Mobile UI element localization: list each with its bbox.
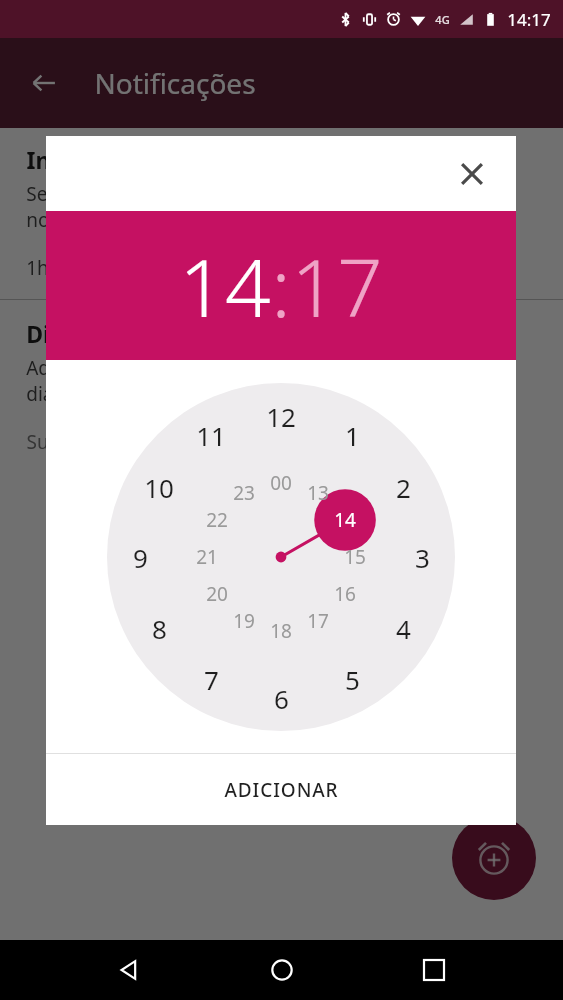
staticText: 9 bbox=[133, 540, 148, 575]
button[interactable]: 6 bbox=[260, 677, 302, 719]
button[interactable]: 12 bbox=[260, 395, 302, 437]
button[interactable]: 1 bbox=[331, 414, 373, 456]
button[interactable]: 17 bbox=[301, 604, 335, 638]
staticText: 14 bbox=[179, 231, 271, 340]
staticText: 11 bbox=[196, 418, 226, 453]
button[interactable]: 10 bbox=[138, 466, 180, 508]
button[interactable]: 9 bbox=[119, 536, 161, 578]
staticText: 4G bbox=[435, 12, 450, 27]
staticText: 6 bbox=[274, 681, 289, 716]
staticText: 16 bbox=[334, 581, 356, 607]
staticText: 3 bbox=[415, 540, 430, 575]
button[interactable]: 2 bbox=[382, 466, 424, 508]
button[interactable]: 5 bbox=[331, 658, 373, 700]
staticText: 14 bbox=[334, 507, 356, 533]
button[interactable]: Fechar bbox=[448, 150, 496, 198]
staticText: 1 bbox=[345, 418, 360, 453]
staticText: 17 bbox=[291, 231, 383, 340]
staticText: 19 bbox=[233, 608, 255, 634]
staticText: Notificações bbox=[94, 64, 256, 102]
staticText: 5 bbox=[345, 662, 360, 697]
staticText: notificações bbox=[26, 207, 133, 233]
button[interactable]: 22 bbox=[200, 503, 234, 537]
button[interactable]: 17 bbox=[291, 231, 383, 340]
button[interactable]: 23 bbox=[227, 476, 261, 510]
staticText: Adicione horários de bbox=[26, 355, 210, 381]
button[interactable]: 14 bbox=[179, 231, 271, 340]
staticText: 21 bbox=[196, 544, 218, 570]
staticText: Intervalo bbox=[26, 144, 133, 175]
staticText: Dia bbox=[26, 318, 64, 349]
staticText: 2 bbox=[396, 470, 411, 505]
button[interactable]: 14 bbox=[328, 503, 362, 537]
button[interactable]: Voltar bbox=[105, 946, 153, 994]
staticText: Sua notificação aparecerá neste horário … bbox=[26, 429, 420, 455]
staticText: Selecione o intervalo das bbox=[26, 181, 248, 207]
button[interactable]: 13 bbox=[301, 476, 335, 510]
staticText: 4 bbox=[396, 611, 411, 646]
button[interactable]: 8 bbox=[138, 607, 180, 649]
button[interactable]: 7 bbox=[190, 658, 232, 700]
staticText: 7 bbox=[204, 662, 219, 697]
button[interactable]: Recentes bbox=[410, 946, 458, 994]
button[interactable]: 11 bbox=[190, 414, 232, 456]
staticText: 10 bbox=[144, 470, 174, 505]
staticText: 8 bbox=[152, 611, 167, 646]
staticText: diariamente bbox=[26, 381, 135, 407]
button[interactable]: 4 bbox=[382, 607, 424, 649]
button[interactable]: Voltar bbox=[20, 59, 68, 107]
staticText: 23 bbox=[233, 480, 255, 506]
button[interactable] bbox=[107, 383, 455, 731]
staticText: 13 bbox=[307, 480, 329, 506]
button[interactable]: 18 bbox=[264, 614, 298, 648]
staticText: 00 bbox=[270, 470, 292, 496]
button[interactable]: 3 bbox=[401, 536, 443, 578]
button[interactable]: 15 bbox=[338, 540, 372, 574]
staticText: 17 bbox=[307, 608, 329, 634]
staticText: 15 bbox=[344, 544, 366, 570]
staticText: : bbox=[271, 231, 291, 340]
button[interactable]: Início bbox=[258, 946, 306, 994]
staticText: 12 bbox=[266, 399, 296, 434]
button[interactable]: 00 bbox=[264, 466, 298, 500]
staticText: 20 bbox=[206, 581, 228, 607]
staticText: ADICIONAR bbox=[224, 777, 339, 803]
button[interactable]: 20 bbox=[200, 577, 234, 611]
staticText: 1h bbox=[26, 255, 49, 281]
button[interactable]: Adicionar alarme bbox=[452, 816, 536, 900]
button[interactable]: ADICIONAR bbox=[46, 754, 516, 825]
staticText: 22 bbox=[206, 507, 228, 533]
staticText: 18 bbox=[270, 618, 292, 644]
button[interactable]: 19 bbox=[227, 604, 261, 638]
button[interactable]: 21 bbox=[190, 540, 224, 574]
staticText: 14:17 bbox=[507, 8, 551, 31]
button[interactable]: 16 bbox=[328, 577, 362, 611]
